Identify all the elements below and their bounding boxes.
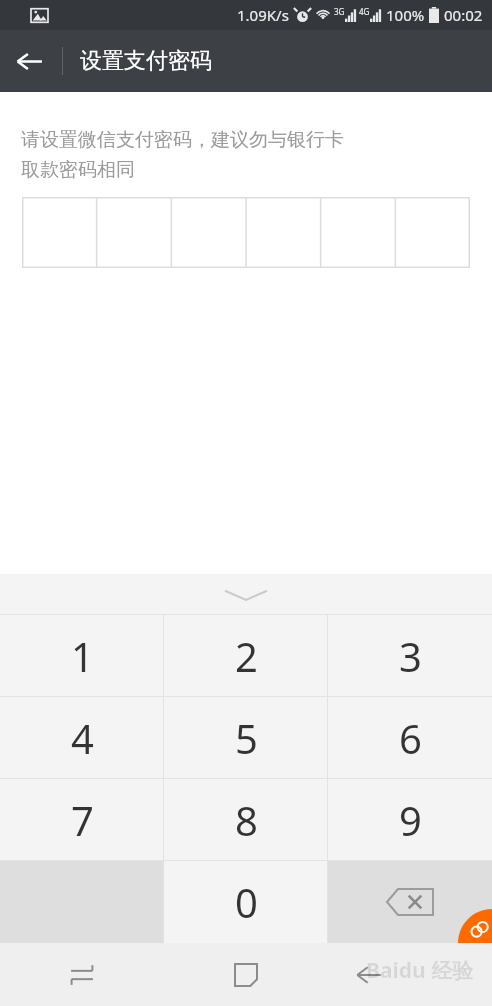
button[interactable]: Recents bbox=[0, 943, 164, 1006]
staticText: 4 bbox=[71, 711, 94, 765]
button[interactable]: 7 bbox=[0, 779, 164, 861]
button[interactable]: 8 bbox=[164, 779, 328, 861]
staticText: 4G bbox=[359, 6, 370, 17]
button[interactable]: 2 bbox=[164, 615, 328, 697]
staticText: 6 bbox=[399, 711, 422, 765]
button[interactable]: Password input bbox=[22, 197, 470, 268]
staticText: 3 bbox=[399, 629, 422, 683]
staticText: 0 bbox=[235, 875, 258, 929]
button[interactable]: 6 bbox=[328, 697, 492, 779]
staticText: 8 bbox=[235, 793, 258, 847]
button[interactable]: 0 bbox=[164, 861, 328, 943]
staticText: 00:02 bbox=[444, 5, 483, 25]
staticText: 请设置微信支付密码，建议勿与银行卡 取款密码相同 bbox=[21, 128, 344, 181]
staticText: 1 bbox=[71, 629, 94, 683]
button[interactable]: 4 bbox=[0, 697, 164, 779]
button[interactable]: Hide keyboard bbox=[0, 574, 492, 615]
button[interactable]: Home bbox=[164, 943, 328, 1006]
button[interactable]: 3 bbox=[328, 615, 492, 697]
staticText: 设置支付密码 bbox=[80, 47, 212, 75]
button[interactable]: 5 bbox=[164, 697, 328, 779]
staticText: 3G bbox=[334, 6, 345, 17]
staticText: 7 bbox=[71, 793, 94, 847]
staticText: 2 bbox=[235, 629, 258, 683]
button[interactable]: Backspace bbox=[328, 861, 492, 943]
button[interactable]: Back bbox=[0, 32, 58, 90]
button[interactable]: 9 bbox=[328, 779, 492, 861]
staticText: 9 bbox=[399, 793, 422, 847]
staticText: 100% bbox=[386, 5, 425, 25]
button[interactable]: 1 bbox=[0, 615, 164, 697]
staticText: 5 bbox=[235, 711, 258, 765]
staticText: Baidu 经验 bbox=[366, 956, 474, 985]
button[interactable]: Back bbox=[328, 943, 492, 1006]
staticText: 1.09K/s bbox=[237, 5, 289, 25]
